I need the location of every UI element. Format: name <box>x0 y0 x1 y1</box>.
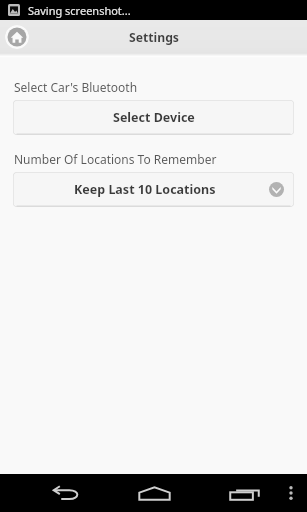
button[interactable]: Keep Last 10 Locations <box>13 172 294 207</box>
staticText: Number Of Locations To Remember <box>14 151 217 167</box>
staticText: Keep Last 10 Locations <box>74 181 216 198</box>
staticText: Saving screenshot... <box>28 3 131 18</box>
button[interactable]: More options <box>280 474 302 512</box>
button[interactable]: Home <box>5 25 29 49</box>
staticText: Select Device <box>113 109 195 126</box>
staticText: Select Car's Bluetooth <box>14 79 138 95</box>
button[interactable]: Select Device <box>13 100 294 135</box>
staticText: Settings <box>129 29 179 46</box>
button[interactable]: Home <box>125 474 184 512</box>
button[interactable]: Back <box>39 474 93 512</box>
button[interactable]: Recent apps <box>216 474 273 512</box>
